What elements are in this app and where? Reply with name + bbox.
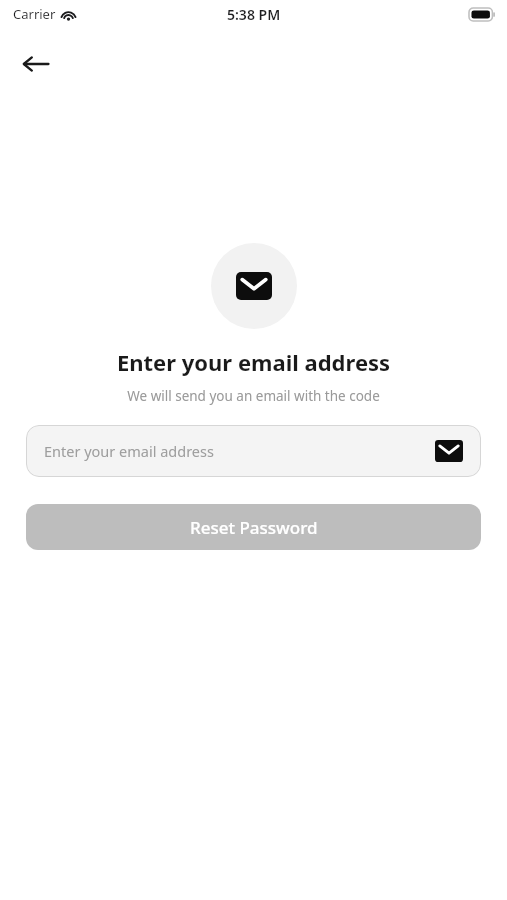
staticText: Reset Password	[190, 516, 318, 539]
button[interactable]: Reset Password	[26, 504, 481, 550]
staticText: 5:38 PM	[227, 5, 281, 24]
staticText: Enter your email address	[44, 441, 435, 461]
button[interactable]: Back	[12, 40, 60, 88]
staticText: Carrier	[13, 5, 56, 23]
staticText: Enter your email address	[0, 347, 507, 377]
staticText: We will send you an email with the code	[0, 387, 507, 405]
button[interactable]: Enter your email address	[26, 425, 481, 477]
